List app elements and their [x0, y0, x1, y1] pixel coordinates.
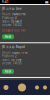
staticText: JR 中央線 Rapid	[2, 45, 25, 49]
button[interactable]: Profile	[41, 80, 49, 95]
button[interactable]: Alerts	[33, 80, 41, 95]
staticText: Status:	[2, 20, 10, 23]
button[interactable]: Track	[2, 69, 14, 74]
staticText: 14:22	[13, 23, 22, 27]
staticText: Delayed	[11, 20, 22, 23]
staticText: Track	[4, 70, 11, 73]
staticText: 6AM–11PM	[12, 51, 27, 54]
staticText: 9AM–5PM	[12, 13, 25, 16]
staticText: Platform:	[2, 16, 14, 20]
staticText: Track	[4, 35, 11, 38]
button[interactable]: Scan	[16, 80, 28, 95]
staticText: Delayed by 6 min	[2, 29, 26, 32]
button[interactable]: Home	[1, 80, 11, 95]
staticText: Status:	[2, 58, 10, 61]
staticText: Depart:	[2, 61, 12, 65]
staticText: ▮▮▮	[45, 0, 48, 3]
staticText: Hours:	[2, 51, 11, 54]
staticText: On time	[11, 58, 22, 61]
staticText: Platform:	[2, 54, 14, 58]
staticText: 2	[15, 54, 17, 58]
staticText: 9:41	[2, 0, 9, 4]
staticText: Depart:	[2, 23, 12, 27]
staticText: 14:35	[13, 61, 22, 65]
button[interactable]: Track	[2, 34, 14, 39]
staticText: Hours:	[2, 13, 11, 16]
staticText: JR 山手線 Line	[2, 7, 22, 11]
staticText: 4	[15, 16, 17, 20]
